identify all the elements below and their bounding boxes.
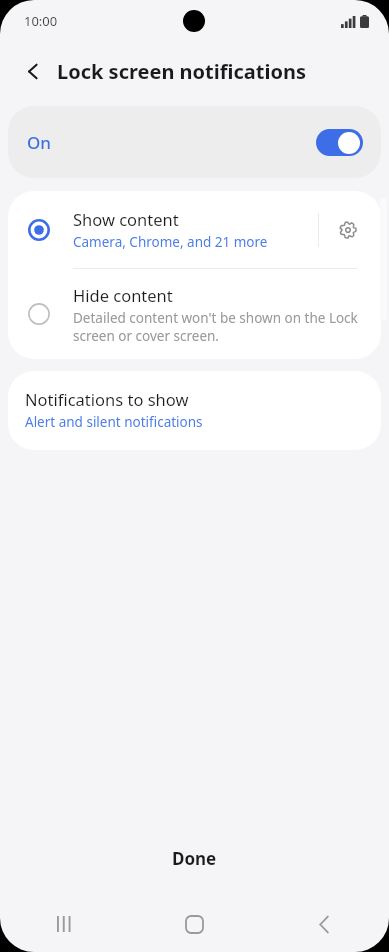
staticText: Show content <box>73 208 179 230</box>
staticText: Detailed content won't be shown on the L… <box>73 309 359 345</box>
staticText: Hide content <box>73 284 173 306</box>
button[interactable]: Hide content <box>8 269 381 359</box>
staticText: Done <box>172 847 217 870</box>
button[interactable]: Recent apps <box>0 896 129 952</box>
staticText: On <box>27 131 51 154</box>
staticText: Camera, Chrome, and 21 more <box>73 233 268 251</box>
staticText: 10:00 <box>24 12 58 30</box>
button[interactable]: Done <box>0 836 389 880</box>
staticText: Notifications to show <box>25 388 189 410</box>
button[interactable]: Home <box>129 896 259 952</box>
button[interactable]: On <box>8 106 381 178</box>
staticText: Lock screen notifications <box>57 58 306 85</box>
button[interactable]: Notifications to show <box>8 371 381 450</box>
staticText: Alert and silent notifications <box>25 413 203 431</box>
button[interactable]: Show content <box>8 191 381 268</box>
button[interactable]: Settings <box>329 211 367 249</box>
button[interactable]: Back <box>259 896 389 952</box>
button[interactable]: Back <box>16 54 50 88</box>
